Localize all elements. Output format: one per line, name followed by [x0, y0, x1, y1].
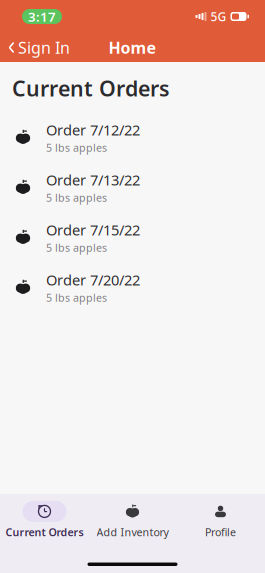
- staticText: Home: [108, 37, 156, 58]
- button[interactable]: Order 7/12/22: [0, 112, 265, 162]
- staticText: Order 7/12/22: [46, 120, 140, 139]
- button[interactable]: Order 7/15/22: [0, 212, 265, 262]
- staticText: Add Inventory: [96, 525, 168, 539]
- button[interactable]: Sign In: [0, 31, 70, 64]
- staticText: Order 7/13/22: [46, 170, 140, 189]
- button[interactable]: Order 7/13/22: [0, 162, 265, 212]
- button[interactable]: Add Inventory: [88, 500, 176, 540]
- button[interactable]: Current Orders: [0, 500, 88, 540]
- staticText: 5 lbs apples: [46, 290, 107, 305]
- staticText: 5 lbs apples: [46, 190, 107, 205]
- staticText: 5 lbs apples: [46, 240, 107, 255]
- staticText: 5 lbs apples: [46, 140, 107, 155]
- button[interactable]: Order 7/20/22: [0, 262, 265, 312]
- staticText: Order 7/15/22: [46, 220, 140, 239]
- staticText: Profile: [205, 525, 236, 539]
- staticText: Current Orders: [5, 525, 83, 539]
- staticText: Sign In: [18, 37, 70, 58]
- staticText: 3:17: [28, 8, 56, 25]
- staticText: 5G: [210, 8, 226, 24]
- button[interactable]: Profile: [176, 500, 264, 540]
- staticText: Order 7/20/22: [46, 270, 140, 289]
- staticText: Current Orders: [12, 74, 170, 102]
